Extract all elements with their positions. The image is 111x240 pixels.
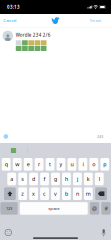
button[interactable]: o — [89, 158, 98, 171]
button[interactable]: e — [24, 158, 32, 171]
button[interactable]: n — [73, 187, 82, 200]
button[interactable]: r — [35, 158, 43, 171]
staticText: l — [99, 175, 100, 183]
button[interactable]: s — [18, 173, 27, 185]
button[interactable]: p — [100, 158, 109, 171]
staticText: 03:13 — [7, 4, 20, 10]
button[interactable]: 123 — [0, 202, 18, 215]
staticText: y — [59, 161, 62, 168]
staticText: @ — [92, 205, 97, 212]
staticText: j — [77, 175, 78, 183]
button[interactable]: u — [67, 158, 76, 171]
button[interactable]: Shift — [4, 187, 16, 200]
staticText: n — [76, 190, 79, 197]
staticText: u — [70, 161, 73, 168]
staticText: g — [54, 175, 57, 183]
staticText: b — [65, 190, 68, 197]
staticText: a — [10, 175, 13, 183]
button[interactable]: g — [51, 173, 60, 185]
staticText: 123 — [6, 206, 12, 211]
button[interactable]: space — [20, 202, 88, 215]
button[interactable]: Cancel — [0, 14, 20, 27]
staticText: s — [21, 175, 24, 183]
button[interactable]: l — [95, 173, 104, 185]
button[interactable]: j — [73, 173, 82, 185]
button[interactable]: Delete — [95, 187, 107, 200]
staticText: t — [49, 161, 51, 168]
staticText: f — [44, 175, 46, 183]
button[interactable]: Hashtag — [101, 202, 111, 215]
staticText: m — [86, 190, 91, 197]
button[interactable]: i — [78, 158, 87, 171]
staticText: q — [5, 161, 8, 168]
button[interactable]: v — [51, 187, 60, 200]
button[interactable]: Emoji keyboard — [3, 227, 14, 238]
staticText: Tweet — [89, 18, 101, 23]
staticText: Wordle 234 2/6 — [16, 32, 51, 38]
staticText: Cancel — [3, 18, 16, 23]
button[interactable]: y — [57, 158, 65, 171]
staticText: z — [21, 190, 24, 197]
staticText: r — [38, 161, 40, 168]
staticText: c — [43, 190, 46, 197]
button[interactable]: w — [13, 158, 22, 171]
staticText: space — [48, 205, 59, 211]
button[interactable]: Everyone can reply — [1, 132, 10, 141]
button[interactable]: h — [62, 173, 71, 185]
button[interactable]: c — [40, 187, 49, 200]
button[interactable]: x — [29, 187, 38, 200]
staticText: 243 — [97, 134, 103, 139]
button[interactable]: m — [84, 187, 93, 200]
staticText: w — [15, 161, 19, 168]
button[interactable]: Dictation — [99, 226, 108, 239]
button[interactable]: f — [40, 173, 49, 185]
staticText: d — [32, 175, 35, 183]
staticText: h — [65, 175, 68, 183]
button[interactable]: Green square emoji — [0, 143, 27, 158]
button[interactable]: k — [84, 173, 93, 185]
staticText: i — [82, 161, 83, 168]
button[interactable]: Tweet — [85, 14, 111, 27]
staticText: k — [87, 175, 90, 183]
button[interactable]: b — [62, 187, 71, 200]
staticText: p — [103, 161, 106, 168]
button[interactable]: a — [7, 173, 16, 185]
staticText: # — [104, 205, 107, 212]
staticText: v — [54, 190, 57, 197]
button[interactable]: At sign — [90, 202, 99, 215]
button[interactable]: d — [29, 173, 38, 185]
button[interactable]: t — [46, 158, 54, 171]
button[interactable]: q — [2, 158, 11, 171]
button[interactable]: z — [18, 187, 27, 200]
staticText: e — [27, 161, 30, 168]
staticText: x — [32, 190, 35, 197]
staticText: o — [92, 161, 95, 168]
